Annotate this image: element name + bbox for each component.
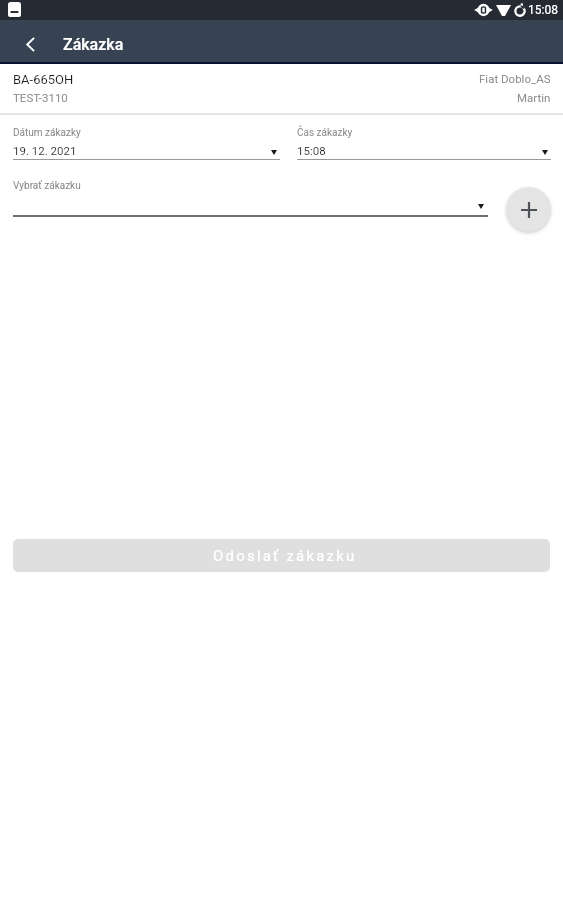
button[interactable]: Add [506,187,551,232]
staticText: Dátum zákazky [13,127,81,139]
staticText: BA-665OH [13,72,74,87]
button[interactable]: Odoslať zákazku [13,539,550,572]
staticText: Fiat Doblo_AS [479,72,551,85]
staticText: Zákazka [63,35,124,54]
button[interactable]: Back [16,30,44,58]
staticText: 19. 12. 2021 [13,144,77,157]
staticText: Martin [517,91,551,104]
staticText: Odoslať zákazku [213,547,357,565]
staticText: Vybrať zákazku [13,180,81,192]
staticText: Čas zákazky [297,127,353,139]
staticText: 15:08 [528,3,558,17]
staticText: 15:08 [297,144,326,157]
staticText: TEST-3110 [13,91,68,104]
